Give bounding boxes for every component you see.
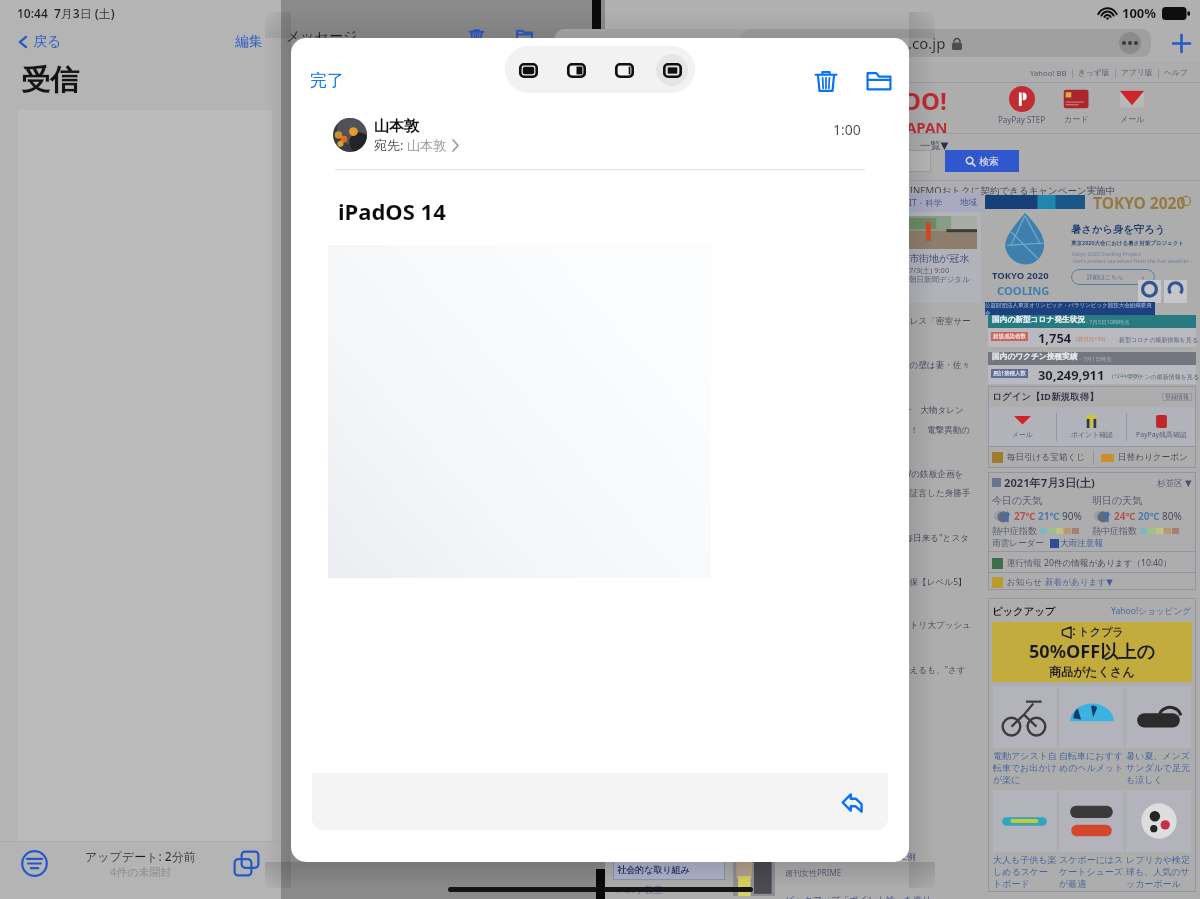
staticText: Tokyo 2020 Cooling Project: [1071, 250, 1141, 257]
staticText: - 7月3日10時時点: [1086, 318, 1130, 326]
staticText: 明日の天気: [1092, 494, 1143, 507]
staticText: - 7月1日時点: [1080, 355, 1112, 363]
button[interactable]: Center window: [656, 54, 688, 86]
button[interactable]: 戻る: [18, 33, 62, 51]
staticText: 運行情報: [1007, 557, 1044, 569]
staticText: 'ナ 大物タレン: [901, 404, 964, 416]
staticText: 公益財団法人東京オリンピック・パラリンピック競技大会組織委員会: [985, 302, 1155, 315]
staticText: 宛先:: [374, 136, 407, 154]
staticText: 自転車におすすめのヘルメット: [1059, 750, 1124, 774]
staticText: 山本敦: [374, 117, 419, 136]
staticText: トレス「密室サー: [901, 316, 971, 327]
staticText: 一覧▼: [920, 139, 949, 152]
staticText: 大人も子供も楽しめるスケートボード: [993, 854, 1057, 890]
staticText: iPadOS 14: [338, 196, 446, 226]
staticText: カード: [1064, 114, 1089, 124]
staticText: 新着があります▼: [1045, 577, 1113, 588]
staticText: 10:44 7月3日 (土): [17, 5, 115, 21]
staticText: Yahoo!ショッピング: [1111, 605, 1192, 617]
staticText: ム: [900, 139, 911, 152]
staticText: »LINEMOおトクに契約できるキャンペーン実施中: [900, 184, 1116, 197]
staticText: メール: [1120, 114, 1145, 124]
staticText: 電動アシスト自転車でお出かけが楽に: [993, 750, 1057, 786]
button[interactable]: Delete: [813, 68, 839, 94]
button[interactable]: Slide over: [608, 54, 640, 86]
staticText: アプリ版: [1121, 68, 1153, 78]
staticText: メール: [1012, 430, 1033, 439]
staticText: 国内のワクチン接種実績: [992, 352, 1078, 362]
staticText: 国内の新型コロナ発生状況: [992, 315, 1085, 325]
staticText: 大雨注意報: [1060, 538, 1103, 549]
staticText: 20件の情報があります（10:40）: [1044, 557, 1172, 569]
staticText: 暑さから身を守ろう: [1071, 223, 1166, 236]
staticText: 1,754: [1038, 329, 1072, 347]
staticText: 受信: [21, 62, 79, 99]
staticText: 20℃: [1138, 509, 1160, 523]
button[interactable]: 完了: [310, 70, 344, 91]
staticText: ›: [1142, 272, 1145, 282]
staticText: ヘルプ: [1164, 68, 1188, 78]
staticText: 雨雲レーダー: [992, 538, 1044, 549]
staticText: 熱中症指数: [992, 525, 1037, 536]
staticText: スケボーにはスケートシューズが最適: [1059, 854, 1124, 890]
staticText: 新規感染者数: [993, 333, 1026, 340]
staticText: 2021年7月3日(土): [1004, 475, 1095, 490]
staticText: TOKYO 2020: [992, 269, 1049, 282]
staticText: PayPay STEP: [998, 114, 1046, 125]
staticText: ワクチンの最新情報を見る: [1126, 373, 1199, 381]
button[interactable]: Full screen: [512, 54, 544, 86]
staticText: 商品がたくさん: [1049, 664, 1135, 679]
staticText: 7/3(土) 9:00: [909, 265, 950, 275]
staticText: 地域: [960, 197, 977, 208]
button[interactable]: Compose: [233, 850, 260, 877]
staticText: "毎日来る"とスタ: [901, 532, 969, 544]
staticText: 山本敦: [407, 137, 446, 153]
button[interactable]: 編集: [235, 33, 263, 51]
staticText: ログイン【ID新規取得】: [992, 390, 1099, 403]
staticText: JAPAN: [901, 117, 948, 137]
button[interactable]: Filter: [21, 850, 48, 877]
staticText: 毎日引ける宝箱くじ: [1007, 452, 1086, 463]
staticText: Yahoo! BB: [1030, 68, 1067, 78]
staticText: ポイント確認: [1071, 430, 1113, 439]
staticText: ピックアップ: [992, 605, 1056, 618]
staticText: 21℃: [1038, 509, 1060, 523]
staticText: 30,249,911: [1038, 366, 1105, 384]
staticText: 戻る: [33, 33, 62, 51]
staticText: COOLING: [997, 283, 1050, 298]
staticText: 27℃: [1014, 509, 1036, 523]
staticText: 検索: [979, 155, 999, 168]
staticText: PayPay残高確認: [1136, 430, 1187, 439]
staticText: 1:00: [833, 120, 861, 139]
staticText: 登録情報: [1165, 393, 1189, 401]
staticText: TOKYO 2020: [1093, 192, 1186, 213]
staticText: 週刊女性PRIME: [785, 867, 842, 878]
button[interactable]: Move to folder: [866, 68, 892, 94]
staticText: 累計接種人数: [993, 370, 1026, 377]
staticText: .co.jp: [908, 33, 946, 53]
staticText: レプリカや検定球も、人気のサッカーボール: [1126, 854, 1191, 890]
staticText: 朝日新聞デジタル: [909, 275, 970, 284]
staticText: IT・科学: [909, 197, 943, 209]
staticText: 日替わりクーポン: [1118, 452, 1188, 463]
staticText: 熱中症指数: [1092, 525, 1137, 536]
staticText: アップデート: 2分前: [85, 848, 196, 864]
button[interactable]: Split view: [560, 54, 592, 86]
staticText: が証言した身勝手: [901, 488, 971, 499]
staticText: メッセージ: [286, 28, 358, 42]
staticText: (前日比+30): [1076, 335, 1106, 343]
staticText: ピックアップ「ポイント絵・あ造り: [785, 894, 932, 899]
button[interactable]: Reply: [840, 789, 867, 816]
staticText: OO!: [902, 84, 947, 117]
staticText: バスケ教室: [617, 884, 663, 895]
staticText: 100%: [1122, 4, 1157, 22]
staticText: トクプラ: [1078, 625, 1124, 639]
staticText: (+244,270): [1112, 372, 1139, 379]
staticText: 4件の未開封: [110, 864, 172, 879]
staticText: た！ 電撃異動の: [901, 424, 971, 436]
staticText: 詳細はこちら: [1087, 273, 1124, 281]
staticText: 社会的な取り組み: [617, 864, 690, 875]
staticText: 新型コロナの最新情報を見る: [1119, 336, 1198, 344]
staticText: ~Let's protect ourselves from the hot we…: [1071, 257, 1194, 264]
staticText: 24℃: [1114, 509, 1136, 523]
